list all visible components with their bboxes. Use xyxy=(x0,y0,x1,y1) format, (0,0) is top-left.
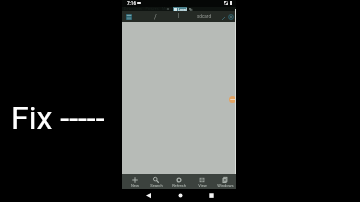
staticText: Local xyxy=(178,8,187,12)
button[interactable]: Windows xyxy=(214,174,236,189)
staticText: Refresh xyxy=(172,183,186,188)
button[interactable]: Recents xyxy=(206,190,217,201)
button[interactable]: sdcard xyxy=(197,14,211,19)
button[interactable]: View xyxy=(191,174,213,189)
staticText: Downloads Pictures Music xyxy=(124,7,172,11)
button[interactable]: Refresh xyxy=(168,174,190,189)
button[interactable]: Storage menu xyxy=(126,14,132,20)
staticText: New xyxy=(131,183,139,188)
button[interactable]: Home xyxy=(175,190,186,201)
staticText: Fix ----- xyxy=(11,99,105,137)
button[interactable]: Refresh xyxy=(228,14,234,20)
staticText: Windows xyxy=(217,183,234,188)
button[interactable]: Local xyxy=(173,7,187,12)
button[interactable]: New xyxy=(124,174,146,189)
staticText: View xyxy=(198,183,207,188)
button[interactable]: / xyxy=(154,13,157,21)
staticText: Search xyxy=(150,183,163,188)
button[interactable]: Search xyxy=(145,174,167,189)
button[interactable]: Fast scroll xyxy=(229,96,236,103)
staticText: 7:16 xyxy=(127,1,137,6)
button[interactable]: Back xyxy=(143,190,154,201)
